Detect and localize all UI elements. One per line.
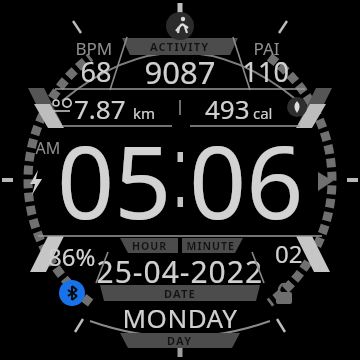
- button[interactable]: Digital watch face: [0, 0, 360, 360]
